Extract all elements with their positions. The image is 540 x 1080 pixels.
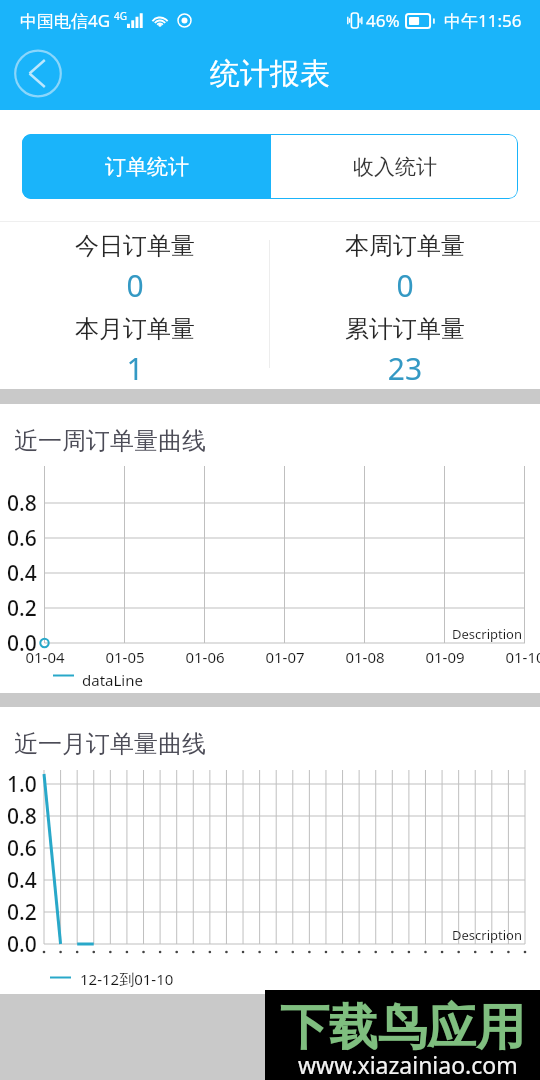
staticText: Description (452, 926, 522, 944)
button[interactable]: Back (12, 49, 64, 101)
staticText: 收入统计 (353, 154, 437, 180)
staticText: 01-06 (165, 647, 245, 667)
staticText: 0 (270, 265, 540, 306)
staticText: 中国电信4G (20, 9, 111, 32)
staticText: 下载鸟应用 (280, 997, 525, 1059)
staticText: 0.6 (7, 524, 37, 553)
staticText: 订单统计 (105, 154, 189, 180)
staticText: 0.8 (7, 489, 37, 518)
staticText: 01-08 (325, 647, 405, 667)
button[interactable]: 订单统计 (22, 134, 271, 199)
staticText: 近一月订单量曲线 (14, 729, 206, 759)
staticText: 今日订单量 (0, 231, 270, 261)
staticText: 累计订单量 (270, 314, 540, 344)
staticText: 1.0 (7, 770, 37, 799)
staticText: 近一周订单量曲线 (14, 426, 206, 456)
staticText: 本周订单量 (270, 231, 540, 261)
staticText: 46% (366, 9, 400, 32)
staticText: 0.4 (7, 559, 37, 588)
button[interactable]: 收入统计 (271, 134, 518, 199)
staticText: 01-05 (85, 647, 165, 667)
staticText: 12-12到01-10 (80, 969, 174, 989)
staticText: 0.0 (7, 629, 37, 658)
staticText: 中午11:56 (444, 9, 522, 32)
staticText: 1 (0, 348, 270, 389)
staticText: Description (452, 625, 522, 643)
staticText: 0.8 (7, 802, 37, 831)
staticText: 0.6 (7, 834, 37, 863)
staticText: 0.0 (7, 930, 37, 959)
staticText: 本月订单量 (0, 314, 270, 344)
staticText: 4G (114, 9, 127, 23)
staticText: 0.2 (7, 594, 37, 623)
staticText: 01-04 (5, 647, 85, 667)
staticText: 01-07 (245, 647, 325, 667)
staticText: 0 (0, 265, 270, 306)
staticText: 01-09 (405, 647, 485, 667)
staticText: dataLine (82, 670, 143, 690)
staticText: 0.4 (7, 866, 37, 895)
staticText: 统计报表 (210, 55, 330, 93)
staticText: 23 (270, 348, 540, 389)
staticText: 0.2 (7, 898, 37, 927)
staticText: 01-10 (485, 647, 540, 667)
staticText: www.xiazainiao.com (298, 1049, 518, 1080)
